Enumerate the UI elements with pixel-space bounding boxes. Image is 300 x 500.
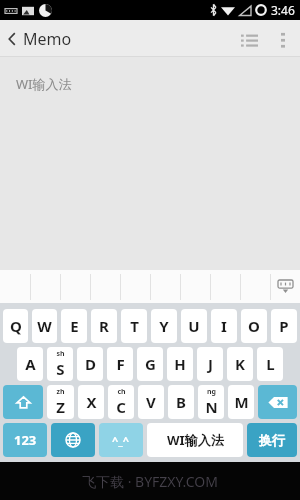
staticText: Z <box>56 397 65 417</box>
staticText: J <box>208 354 213 374</box>
button[interactable]: Y <box>151 309 177 343</box>
button[interactable]: U <box>181 309 207 343</box>
button[interactable]: zh <box>47 385 74 419</box>
button[interactable]: B <box>168 385 194 419</box>
staticText: X <box>86 392 97 412</box>
button[interactable]: K <box>227 347 253 381</box>
button[interactable]: O <box>241 309 267 343</box>
staticText: I <box>221 316 227 336</box>
button[interactable]: D <box>77 347 103 381</box>
staticText: F <box>116 354 125 374</box>
staticText: zh <box>56 387 65 397</box>
button[interactable]: ng <box>198 385 224 419</box>
staticText: Memo <box>23 28 72 50</box>
staticText: M <box>234 392 249 412</box>
staticText: 飞下载 · BYFZXY.COM <box>82 472 218 491</box>
button[interactable]: I <box>211 309 237 343</box>
button[interactable]: F <box>107 347 133 381</box>
button[interactable]: Switch input language <box>51 423 95 457</box>
button[interactable]: P <box>271 309 297 343</box>
staticText: B <box>176 392 186 412</box>
staticText: H <box>174 354 186 374</box>
button[interactable]: Emoticons <box>99 423 143 457</box>
button[interactable]: More options <box>266 22 300 56</box>
button[interactable]: Q <box>3 309 28 343</box>
staticText: N <box>205 397 218 417</box>
staticText: Y <box>159 316 169 336</box>
staticText: E <box>70 316 79 336</box>
staticText: V <box>146 392 156 412</box>
button[interactable]: L <box>257 347 283 381</box>
staticText: W <box>37 316 52 336</box>
button[interactable]: Back <box>0 22 82 56</box>
staticText: Q <box>10 316 22 336</box>
staticText: 换行 <box>259 432 285 448</box>
staticText: K <box>235 354 245 374</box>
staticText: O <box>248 316 260 336</box>
button[interactable]: M <box>228 385 254 419</box>
staticText: sh <box>56 349 65 359</box>
staticText: R <box>99 316 109 336</box>
button[interactable]: H <box>167 347 193 381</box>
button[interactable]: J <box>197 347 223 381</box>
button[interactable]: ch <box>108 385 134 419</box>
button[interactable]: List view <box>232 22 266 56</box>
staticText: ch <box>117 387 126 397</box>
staticText: WI输入法 <box>167 431 224 449</box>
staticText: 123 <box>14 431 37 449</box>
button[interactable]: X <box>78 385 104 419</box>
staticText: D <box>85 354 96 374</box>
button[interactable]: sh <box>47 347 73 381</box>
button[interactable]: 123 <box>3 423 47 457</box>
button[interactable]: V <box>138 385 164 419</box>
button[interactable]: Backspace <box>258 385 297 419</box>
button[interactable]: Shift <box>3 385 43 419</box>
staticText: P <box>279 316 289 336</box>
button[interactable]: WI输入法 <box>147 423 243 457</box>
button[interactable]: W <box>32 309 57 343</box>
button[interactable]: R <box>91 309 117 343</box>
staticText: A <box>25 354 36 374</box>
button[interactable]: T <box>121 309 147 343</box>
staticText: ^_^ <box>112 433 130 448</box>
staticText: 3:46 <box>271 2 295 18</box>
staticText: G <box>145 354 156 374</box>
button[interactable]: Hide keyboard <box>271 270 300 303</box>
staticText: U <box>188 316 200 336</box>
staticText: C <box>116 397 126 417</box>
staticText: WI输入法 <box>16 75 72 93</box>
staticText: S <box>56 359 65 379</box>
button[interactable]: G <box>137 347 163 381</box>
button[interactable]: A <box>17 347 43 381</box>
staticText: L <box>266 354 275 374</box>
button[interactable]: 换行 <box>247 423 297 457</box>
button[interactable]: E <box>61 309 87 343</box>
staticText: ng <box>207 387 216 397</box>
staticText: T <box>130 316 139 336</box>
other: Back <box>8 32 16 46</box>
